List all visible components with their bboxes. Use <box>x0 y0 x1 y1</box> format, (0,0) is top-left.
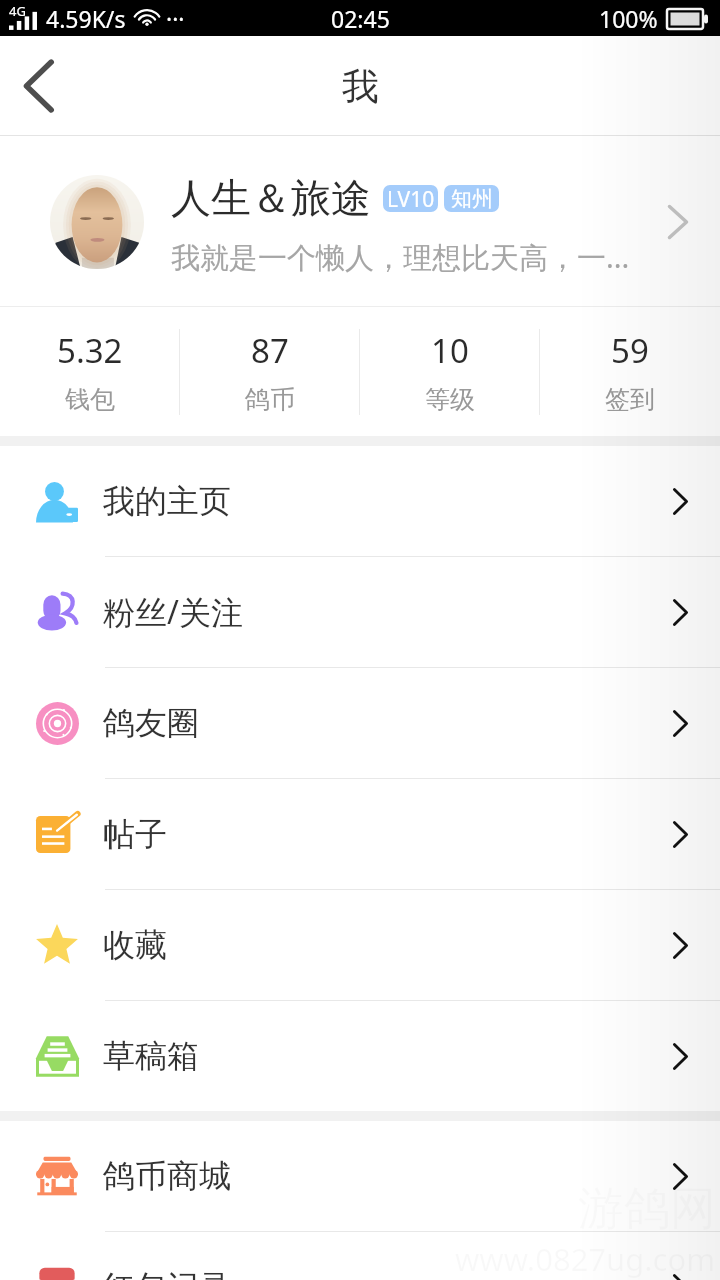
staticText: 签到 <box>605 384 655 415</box>
button[interactable]: 收藏 <box>0 890 720 1000</box>
staticText: 10 <box>431 328 469 373</box>
button[interactable]: 帖子 <box>0 779 720 889</box>
staticText: 我的主页 <box>103 481 231 521</box>
staticText: 5.32 <box>57 328 123 373</box>
staticText: www.0827ug.com <box>455 1238 716 1280</box>
staticText: 鸽币 <box>245 384 295 415</box>
button[interactable]: 59 <box>540 307 720 436</box>
staticText: 4.59K/s <box>46 3 126 34</box>
staticText: 100% <box>599 3 658 34</box>
button[interactable]: 鸽友圈 <box>0 668 720 778</box>
staticText: 粉丝/关注 <box>103 590 243 634</box>
staticText: 4G <box>9 2 26 20</box>
staticText: 我 <box>342 63 379 110</box>
button[interactable]: 人生＆旅途 <box>0 136 720 307</box>
staticText: 知州 <box>451 186 493 212</box>
staticText: 草稿箱 <box>103 1036 199 1076</box>
button[interactable]: 87 <box>180 307 360 436</box>
staticText: 帖子 <box>103 814 167 854</box>
staticText: 等级 <box>425 384 475 415</box>
staticText: 鸽币商城 <box>103 1156 231 1196</box>
staticText: 收藏 <box>103 925 167 965</box>
button[interactable]: 粉丝/关注 <box>0 557 720 667</box>
button[interactable]: 我的主页 <box>0 446 720 556</box>
staticText: 87 <box>251 328 289 373</box>
button[interactable]: 草稿箱 <box>0 1001 720 1111</box>
staticText: 人生＆旅途 <box>171 173 371 223</box>
staticText: LV10 <box>387 185 435 212</box>
staticText: 鸽友圈 <box>103 703 199 743</box>
button[interactable]: 红包记录 <box>0 1232 720 1280</box>
staticText: 02:45 <box>331 3 390 34</box>
button[interactable]: 5.32 <box>0 307 180 436</box>
staticText: ··· <box>166 3 185 34</box>
button[interactable]: Back <box>0 36 84 136</box>
staticText: 游鸽网 <box>578 1180 716 1238</box>
staticText: 红包记录 <box>103 1267 231 1280</box>
button[interactable]: 10 <box>360 307 540 436</box>
staticText: 我就是一个懒人，理想比天高，一... <box>171 237 630 277</box>
button[interactable]: 鸽币商城 <box>0 1121 720 1231</box>
staticText: 钱包 <box>65 384 115 415</box>
staticText: 59 <box>611 328 649 373</box>
